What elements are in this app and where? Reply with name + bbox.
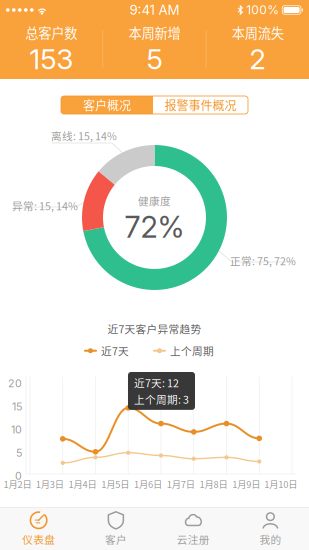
- staticText: 5: [16, 446, 22, 459]
- staticText: 1月2日: [3, 477, 31, 491]
- staticText: 1月10日: [264, 477, 297, 491]
- button[interactable]: 报警事件概况: [153, 96, 248, 114]
- staticText: 1月9日: [232, 477, 260, 491]
- staticText: 100%: [246, 3, 279, 17]
- staticText: 2: [249, 42, 266, 76]
- staticText: 正常: 75, 72%: [230, 253, 296, 268]
- staticText: 0: [15, 469, 22, 482]
- staticText: 报警事件概况: [164, 96, 236, 114]
- staticText: 1月5日: [101, 477, 129, 491]
- staticText: 近7天: [101, 343, 129, 358]
- button[interactable]: 我的: [232, 507, 309, 550]
- staticText: 10: [11, 423, 22, 436]
- staticText: 1月6日: [134, 477, 162, 491]
- staticText: 近7天: 12: [134, 375, 179, 390]
- staticText: 总客户数: [25, 23, 77, 42]
- staticText: 健康度: [138, 193, 171, 208]
- staticText: 9:41 AM: [129, 2, 179, 18]
- staticText: 本周流失: [232, 23, 284, 42]
- staticText: 5: [146, 42, 162, 76]
- staticText: 72%: [124, 209, 184, 245]
- button[interactable]: 仪表盘: [0, 507, 77, 550]
- staticText: 本周新增: [128, 23, 180, 42]
- button[interactable]: 客户: [77, 507, 154, 550]
- staticText: 近7天客户异常趋势: [107, 321, 201, 336]
- staticText: 20: [8, 377, 22, 390]
- staticText: 1月7日: [167, 477, 195, 491]
- staticText: 1月3日: [36, 477, 64, 491]
- staticText: 客户: [105, 531, 127, 547]
- staticText: 异常: 15, 14%: [12, 198, 78, 213]
- staticText: 我的: [259, 531, 281, 547]
- staticText: 客户概况: [83, 96, 131, 114]
- staticText: 仪表盘: [22, 531, 55, 547]
- staticText: 云注册: [177, 531, 210, 547]
- staticText: 上个周期: 3: [134, 391, 189, 407]
- staticText: 离线: 15, 14%: [51, 128, 117, 143]
- staticText: 153: [29, 42, 73, 76]
- staticText: 1月4日: [68, 477, 96, 491]
- staticText: 15: [12, 400, 22, 413]
- staticText: 上个周期: [170, 343, 214, 358]
- button[interactable]: 客户概况: [61, 96, 153, 114]
- staticText: 1月8日: [199, 477, 227, 491]
- button[interactable]: 云注册: [154, 507, 232, 550]
